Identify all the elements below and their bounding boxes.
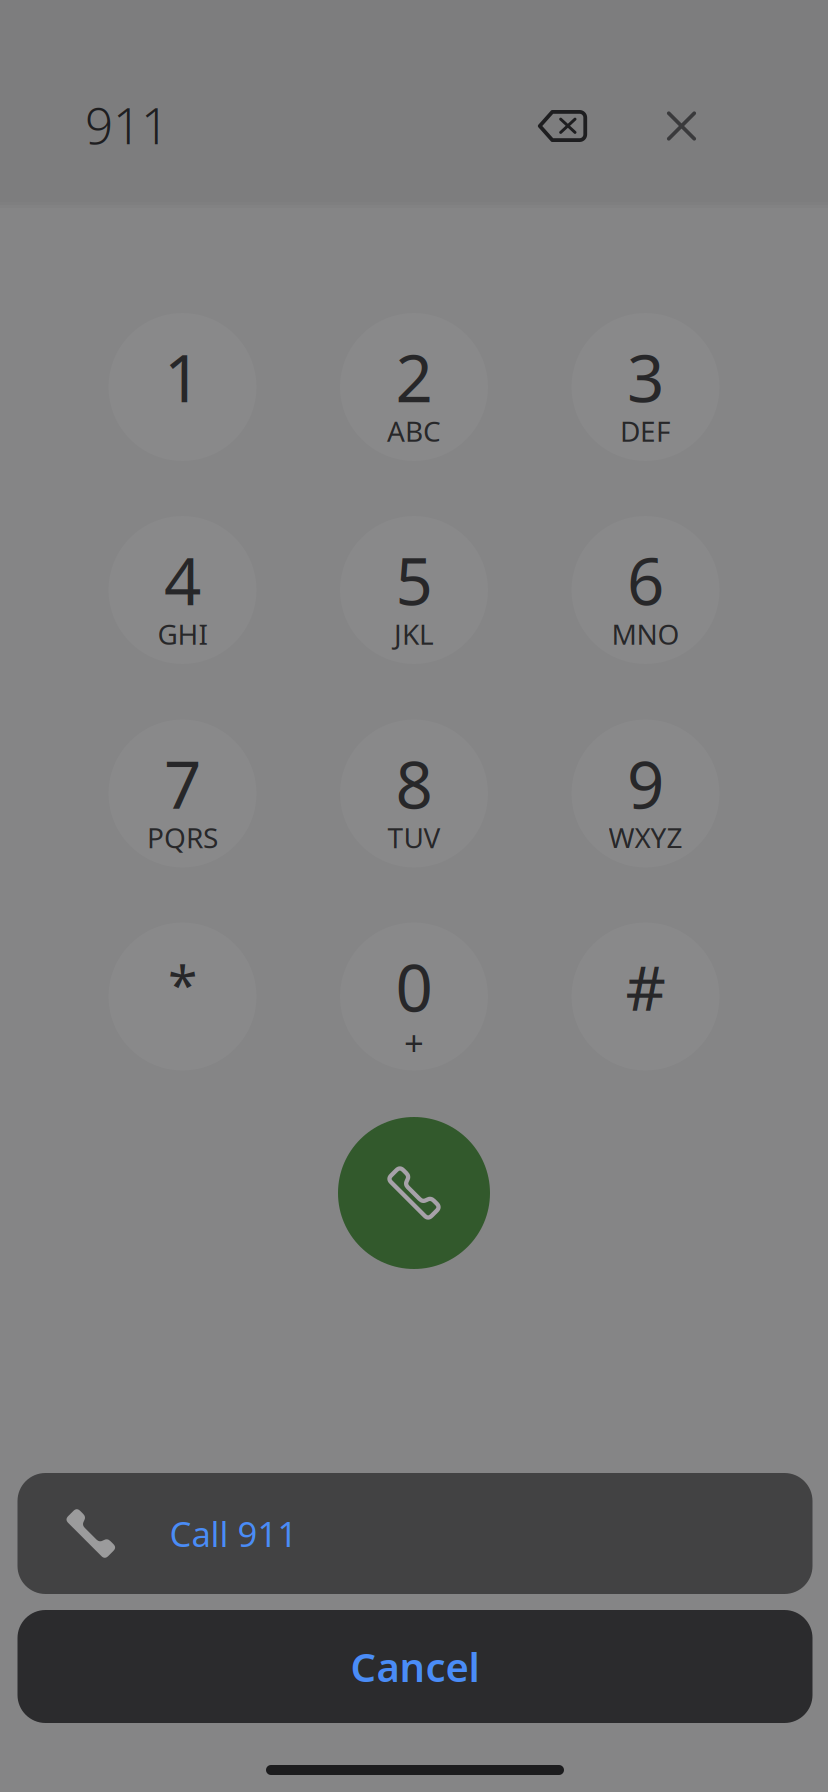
- button[interactable]: Call 911: [17, 1473, 812, 1594]
- button[interactable]: Cancel: [17, 1610, 812, 1723]
- staticText: MNO: [611, 615, 679, 653]
- staticText: GHI: [157, 615, 207, 653]
- button[interactable]: Close: [626, 78, 736, 174]
- staticText: WXYZ: [608, 819, 682, 856]
- staticText: 911: [85, 92, 169, 158]
- staticText: 9: [627, 740, 664, 827]
- staticText: 5: [395, 537, 432, 623]
- button[interactable]: 6: [571, 516, 719, 664]
- staticText: +: [404, 1019, 424, 1065]
- staticText: 4: [164, 537, 201, 623]
- button[interactable]: 1: [108, 313, 256, 461]
- button[interactable]: 2: [340, 313, 488, 461]
- staticText: 1: [164, 334, 201, 420]
- button[interactable]: 0: [340, 922, 488, 1070]
- button[interactable]: #: [571, 922, 719, 1070]
- staticText: #: [625, 945, 665, 1028]
- button[interactable]: 8: [340, 719, 488, 867]
- button[interactable]: 9: [571, 719, 719, 867]
- staticText: Cancel: [350, 1640, 479, 1693]
- staticText: 2: [395, 334, 432, 420]
- staticText: PQRS: [147, 819, 218, 856]
- staticText: *: [168, 948, 197, 1019]
- staticText: 0: [395, 943, 432, 1030]
- staticText: 7: [164, 740, 201, 827]
- button[interactable]: 3: [571, 313, 719, 461]
- staticText: ABC: [387, 412, 441, 450]
- staticText: Call 911: [169, 1510, 297, 1556]
- staticText: TUV: [387, 819, 440, 856]
- button[interactable]: 5: [340, 516, 488, 664]
- button[interactable]: Call: [338, 1117, 490, 1269]
- button[interactable]: Delete: [507, 78, 617, 174]
- staticText: 8: [395, 740, 432, 827]
- staticText: 6: [627, 537, 664, 623]
- button[interactable]: 7: [108, 719, 256, 867]
- button[interactable]: 4: [108, 516, 256, 664]
- staticText: JKL: [394, 615, 434, 653]
- staticText: 3: [627, 334, 664, 420]
- button[interactable]: *: [108, 922, 256, 1070]
- staticText: DEF: [620, 412, 671, 450]
